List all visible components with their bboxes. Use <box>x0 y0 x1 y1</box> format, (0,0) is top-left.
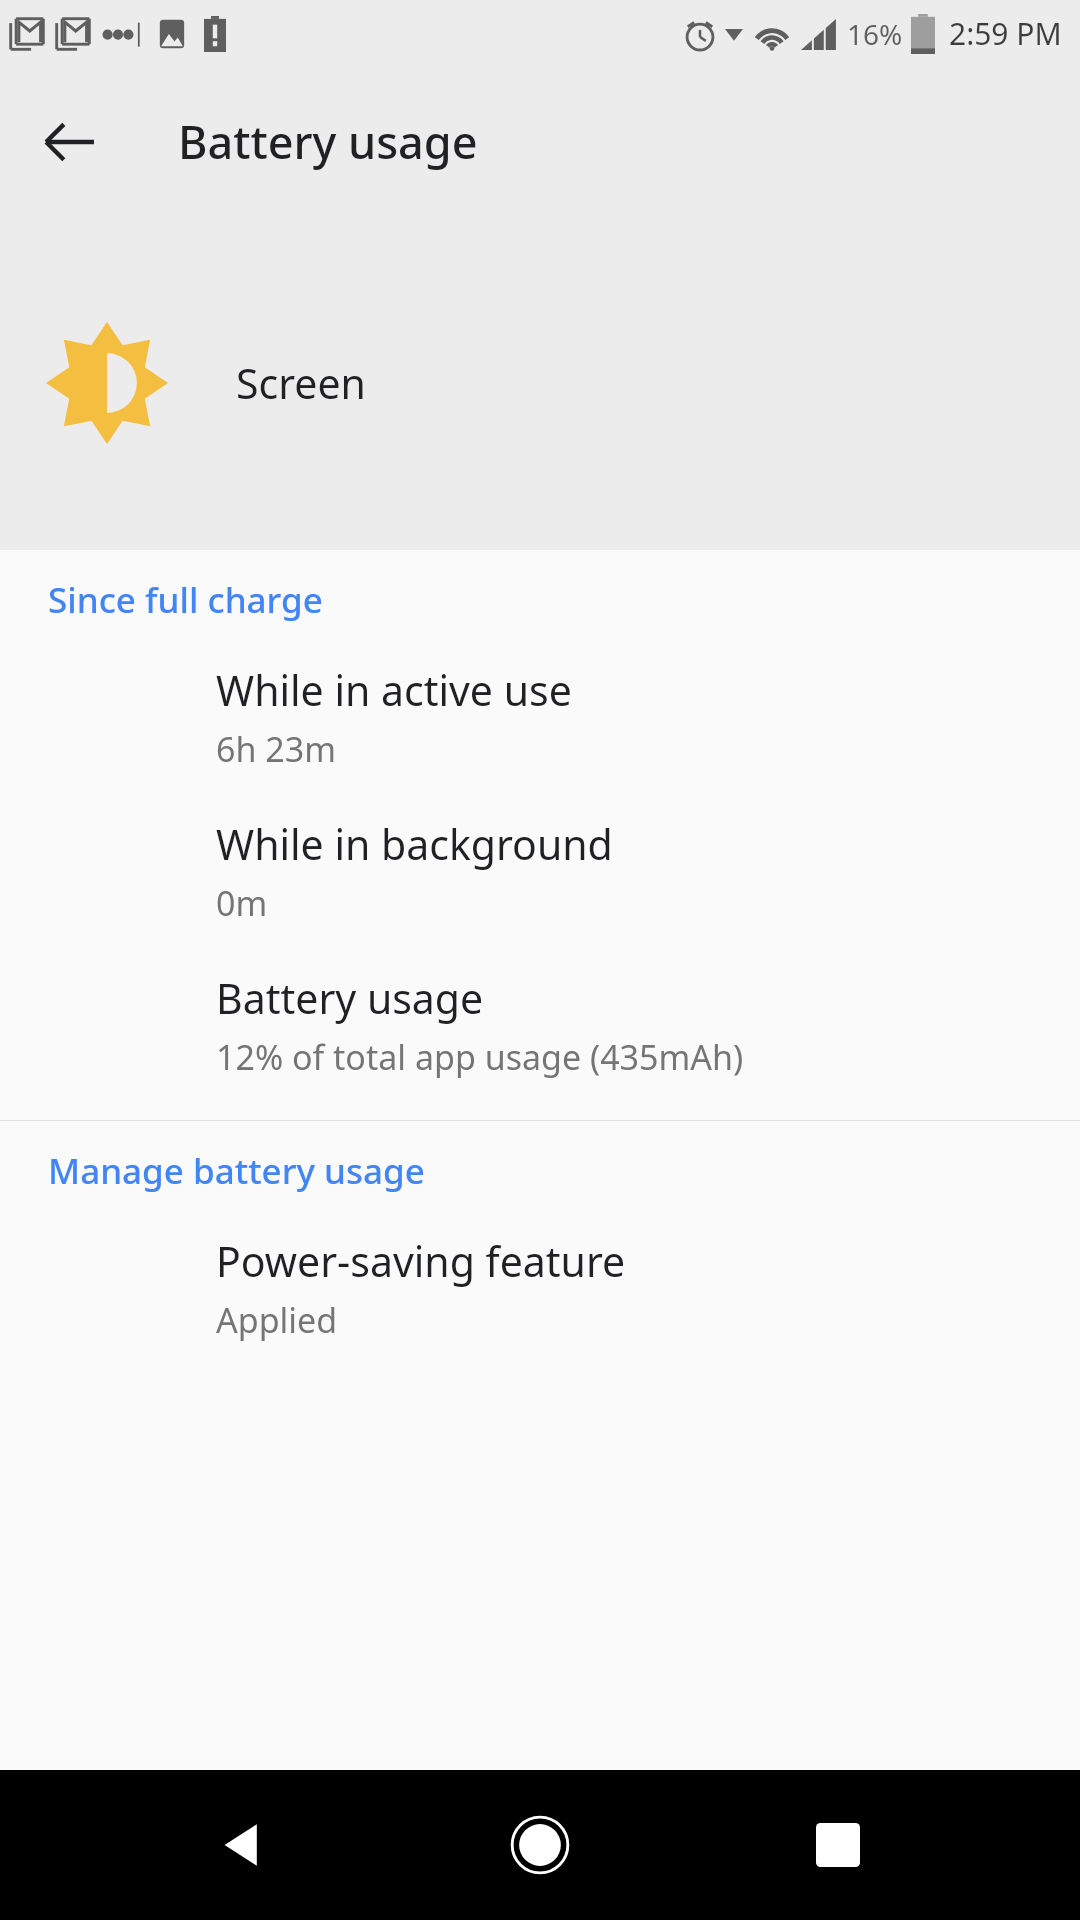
staticText: 0m <box>216 880 268 926</box>
staticText: Battery usage <box>216 970 484 1026</box>
button[interactable]: Battery usage <box>0 948 1080 1102</box>
button[interactable]: Home <box>485 1790 595 1900</box>
staticText: While in active use <box>216 662 572 718</box>
staticText: 2:59 PM <box>949 13 1062 54</box>
button[interactable]: Power-saving feature <box>0 1211 1080 1365</box>
staticText: Since full charge <box>48 576 323 624</box>
button[interactable]: While in background <box>0 794 1080 948</box>
button[interactable]: While in active use <box>0 640 1080 794</box>
staticText: Manage battery usage <box>48 1147 425 1195</box>
staticText: 6h 23m <box>216 726 336 772</box>
staticText: Battery usage <box>178 111 478 172</box>
button[interactable]: Recent apps <box>783 1790 893 1900</box>
staticText: Applied <box>216 1297 338 1343</box>
staticText: Power-saving feature <box>216 1233 626 1289</box>
button[interactable]: Back <box>188 1790 298 1900</box>
staticText: 12% of total app usage (435mAh) <box>216 1034 744 1080</box>
staticText: 16% <box>847 15 903 53</box>
button[interactable]: Back <box>26 98 112 184</box>
staticText: Screen <box>236 355 366 411</box>
staticText: While in background <box>216 816 613 872</box>
